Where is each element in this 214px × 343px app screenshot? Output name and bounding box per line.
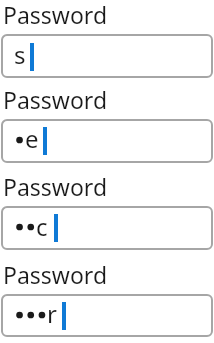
staticText: Password bbox=[3, 171, 108, 202]
button[interactable]: Password input bbox=[1, 206, 213, 250]
staticText: e bbox=[25, 122, 39, 155]
staticText: Password bbox=[3, 259, 108, 290]
staticText: s bbox=[14, 38, 26, 71]
button[interactable]: Password input bbox=[1, 294, 213, 337]
staticText: c bbox=[36, 210, 48, 243]
staticText: Password bbox=[3, 0, 108, 30]
button[interactable]: Password input bbox=[1, 34, 213, 78]
button[interactable]: Password input bbox=[1, 119, 213, 163]
staticText: Password bbox=[3, 84, 108, 115]
staticText: r bbox=[47, 297, 57, 330]
